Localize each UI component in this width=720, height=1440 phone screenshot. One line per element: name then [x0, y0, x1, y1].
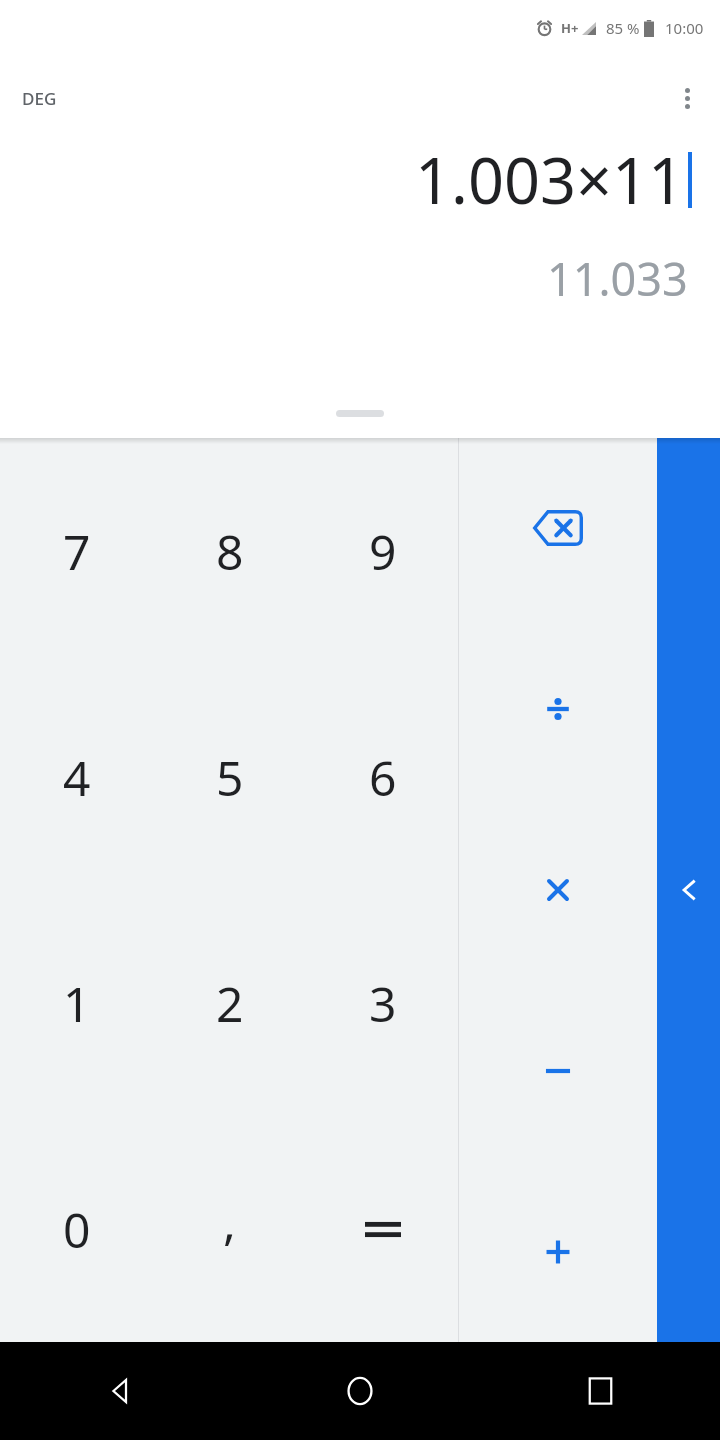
staticText: 8 [216, 519, 244, 584]
button[interactable]: 2 [153, 890, 306, 1116]
staticText: 5 [216, 745, 244, 810]
staticText: 7 [63, 519, 91, 584]
button[interactable]: More options [666, 77, 708, 119]
button[interactable]: Equals [306, 1116, 459, 1342]
staticText: H+ [561, 19, 579, 37]
button[interactable]: Minus [459, 980, 657, 1161]
other: Equals [365, 1219, 401, 1240]
button[interactable]: 6 [306, 664, 459, 890]
button[interactable]: 9 [306, 438, 459, 664]
button[interactable]: 5 [153, 664, 306, 890]
button[interactable]: 7 [0, 438, 153, 664]
button[interactable]: Multiply [459, 799, 657, 980]
button[interactable]: Home [240, 1342, 480, 1440]
staticText: 2 [216, 971, 244, 1036]
button[interactable]: Back [0, 1342, 240, 1440]
staticText: 9 [369, 519, 397, 584]
button[interactable]: 1 [0, 890, 153, 1116]
staticText: , [223, 1189, 236, 1254]
staticText: 1.003×11 [415, 137, 685, 223]
button[interactable]: , [153, 1116, 306, 1342]
button[interactable]: Plus [459, 1161, 657, 1342]
button[interactable]: 4 [0, 664, 153, 890]
staticText: 85 % [606, 18, 640, 38]
staticText: 6 [369, 745, 397, 810]
button[interactable]: 8 [153, 438, 306, 664]
button[interactable]: Recent apps [480, 1342, 720, 1440]
button[interactable]: 3 [306, 890, 459, 1116]
button[interactable]: DEG [22, 87, 57, 110]
staticText: 11.033 [547, 248, 688, 309]
staticText: 3 [369, 971, 397, 1036]
button[interactable]: 0 [0, 1116, 153, 1342]
button[interactable]: Delete [459, 438, 657, 618]
staticText: 10:00 [665, 18, 704, 38]
staticText: 4 [63, 745, 91, 810]
button[interactable]: Show advanced pad [657, 438, 720, 1342]
button[interactable] [336, 410, 384, 417]
staticText: 0 [63, 1197, 91, 1262]
button[interactable]: Divide [459, 618, 657, 799]
staticText: 1 [63, 971, 91, 1036]
